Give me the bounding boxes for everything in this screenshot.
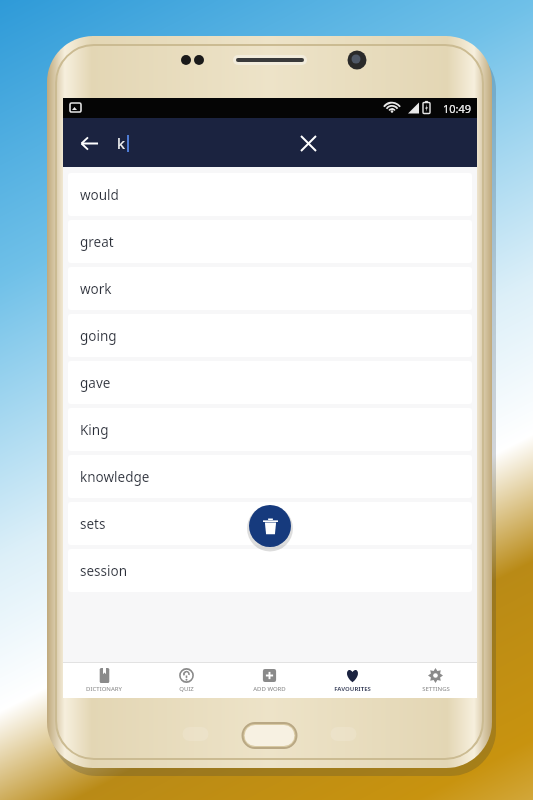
staticText: SETTINGS	[422, 685, 450, 693]
button[interactable]: Clear search	[289, 124, 327, 162]
button[interactable]: great	[68, 220, 472, 263]
staticText: 10:49	[443, 101, 472, 116]
staticText: work	[80, 280, 112, 298]
button[interactable]: would	[68, 173, 472, 216]
button[interactable]: SETTINGS	[394, 663, 477, 698]
staticText: DICTIONARY	[86, 685, 122, 693]
button[interactable]: DICTIONARY	[63, 663, 145, 698]
button[interactable]: Back	[71, 125, 107, 161]
staticText: ADD WORD	[253, 685, 286, 693]
button[interactable]: session	[68, 549, 472, 592]
staticText: great	[80, 233, 114, 251]
button[interactable]: sets	[68, 502, 472, 545]
staticText: King	[80, 421, 109, 439]
button[interactable]: going	[68, 314, 472, 357]
button[interactable]: Delete all	[249, 505, 291, 547]
button[interactable]: ADD WORD	[228, 663, 311, 698]
staticText: session	[80, 562, 128, 580]
staticText: would	[80, 186, 119, 204]
button[interactable]: work	[68, 267, 472, 310]
staticText: knowledge	[80, 468, 150, 486]
button[interactable]: gave	[68, 361, 472, 404]
button[interactable]: knowledge	[68, 455, 472, 498]
staticText: k	[117, 133, 126, 153]
staticText: FAVOURITES	[334, 685, 371, 693]
button[interactable]: QUIZ	[145, 663, 228, 698]
button[interactable]: FAVOURITES	[311, 663, 394, 698]
staticText: going	[80, 327, 117, 345]
button[interactable]: King	[68, 408, 472, 451]
staticText: gave	[80, 374, 111, 392]
staticText: QUIZ	[179, 685, 194, 693]
staticText: sets	[80, 515, 106, 533]
